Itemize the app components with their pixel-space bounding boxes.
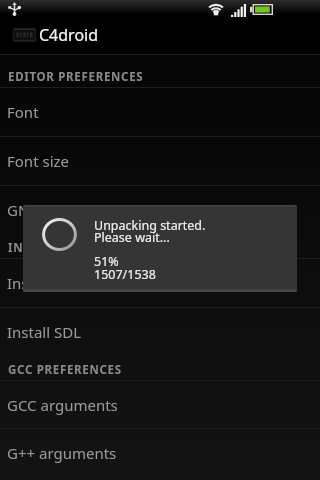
staticText: Unpacking started. — [94, 217, 206, 234]
button[interactable]: Install NDK — [0, 259, 320, 308]
staticText: G++ arguments — [7, 443, 117, 463]
staticText: Install NDK — [7, 273, 86, 293]
staticText: Font size — [7, 151, 70, 171]
button[interactable]: Install SDL — [0, 308, 320, 356]
staticText: GCC PREFERENCES — [8, 362, 122, 378]
staticText: EDITOR PREFERENCES — [8, 69, 144, 85]
staticText: Please wait... — [94, 229, 170, 246]
staticText: GNU C99 mode — [7, 200, 116, 220]
staticText: INSTALL — [8, 240, 60, 256]
button[interactable]: G++ arguments — [0, 429, 320, 479]
button[interactable]: Font — [0, 88, 320, 137]
staticText: Font — [7, 102, 39, 122]
button[interactable]: Font size — [0, 137, 320, 186]
button[interactable]: GCC arguments — [0, 381, 320, 429]
staticText: 51% — [94, 253, 119, 270]
staticText: GCC arguments — [7, 395, 118, 415]
staticText: Install SDL — [7, 322, 82, 342]
staticText: 1507/1538 — [94, 266, 156, 283]
button[interactable]: GNU C99 mode — [0, 186, 320, 234]
staticText: C4droid — [39, 24, 99, 46]
